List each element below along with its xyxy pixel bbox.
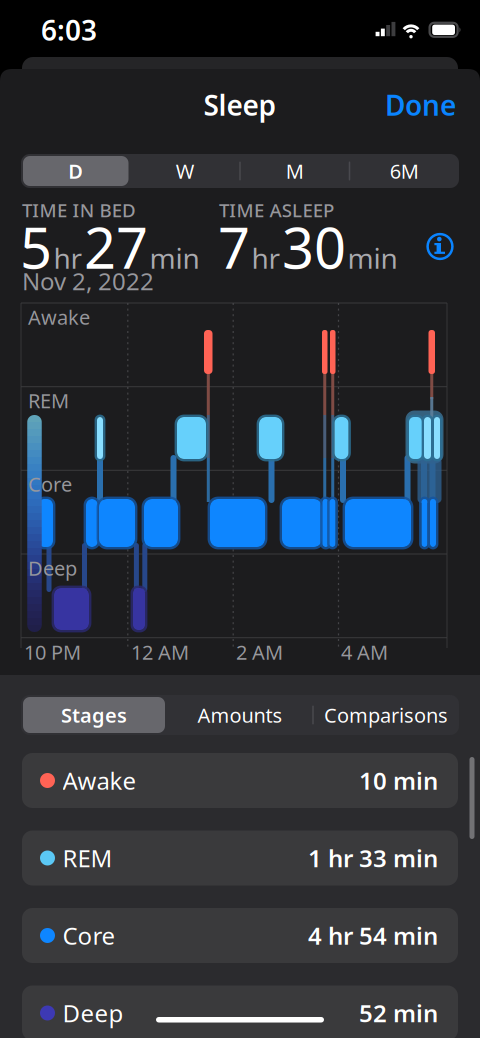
staticText: Sleep: [203, 86, 276, 124]
button[interactable]: Deep: [22, 985, 458, 1038]
staticText: Core: [28, 471, 72, 497]
staticText: 4 AM: [341, 639, 388, 665]
staticText: 1 hr 33 min: [308, 842, 438, 874]
staticText: 6:03: [41, 11, 97, 49]
staticText: hr: [53, 239, 82, 276]
staticText: 7: [218, 210, 250, 284]
staticText: Awake: [28, 304, 90, 330]
button[interactable]: Done: [346, 85, 456, 125]
button[interactable]: Awake: [22, 753, 458, 808]
staticText: min: [149, 239, 199, 276]
staticText: W: [176, 158, 195, 184]
staticText: min: [347, 239, 397, 276]
staticText: 2 AM: [236, 639, 283, 665]
staticText: 10 min: [359, 765, 438, 796]
button[interactable]: Stages: [23, 697, 165, 733]
staticText: Stages: [61, 702, 127, 728]
staticText: D: [68, 158, 83, 184]
staticText: Core: [62, 920, 115, 951]
staticText: REM: [62, 842, 112, 874]
staticText: Done: [385, 86, 456, 124]
staticText: M: [286, 158, 304, 184]
button[interactable]: 6M: [351, 156, 457, 186]
staticText: 4 hr 54 min: [308, 920, 438, 951]
staticText: Nov 2, 2022: [22, 265, 154, 297]
staticText: 30: [282, 210, 346, 284]
staticText: 10 PM: [24, 639, 81, 665]
button[interactable]: D: [23, 156, 128, 186]
staticText: TIME IN BED: [22, 198, 136, 222]
button[interactable]: About sleep stages: [425, 231, 455, 261]
staticText: Comparisons: [324, 702, 448, 728]
staticText: 5: [20, 210, 52, 284]
button[interactable]: M: [242, 156, 347, 186]
staticText: 12 AM: [131, 639, 189, 665]
staticText: Deep: [28, 555, 77, 581]
staticText: Awake: [62, 765, 136, 796]
staticText: hr: [251, 239, 280, 276]
staticText: 52 min: [359, 997, 438, 1029]
button[interactable]: REM: [22, 830, 458, 885]
staticText: Amounts: [197, 702, 282, 728]
staticText: 6M: [390, 158, 419, 184]
staticText: REM: [28, 387, 69, 414]
button[interactable]: Core: [22, 908, 458, 963]
button[interactable]: W: [132, 156, 238, 186]
staticText: 27: [84, 210, 148, 284]
staticText: Deep: [62, 997, 123, 1029]
staticText: TIME ASLEEP: [219, 198, 334, 222]
button[interactable]: Amounts: [169, 697, 311, 733]
button[interactable]: Comparisons: [315, 697, 457, 733]
